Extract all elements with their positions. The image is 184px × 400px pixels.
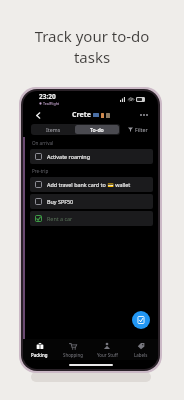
- staticText: Pre-trip: [32, 168, 49, 174]
- staticText: Shopping: [63, 352, 83, 358]
- button[interactable]: Your Stuff: [90, 339, 124, 360]
- staticText: Labels: [134, 352, 148, 358]
- staticText: On arrival: [32, 140, 54, 146]
- button[interactable]: More options: [140, 114, 148, 116]
- staticText: Activate roaming: [47, 153, 91, 160]
- staticText: TealFlight: [43, 101, 60, 106]
- button[interactable]: Back: [32, 109, 44, 121]
- staticText: Packing: [31, 352, 48, 358]
- button[interactable]: Labels: [124, 339, 158, 360]
- button[interactable]: Buy SPF50: [30, 194, 153, 209]
- staticText: Buy SPF50: [47, 198, 74, 205]
- staticText: Track your to-do tasks: [0, 26, 184, 68]
- button[interactable]: Shopping: [56, 339, 90, 360]
- button[interactable]: Rent a car: [30, 211, 153, 226]
- staticText: Add travel bank card to 💳 wallet: [47, 181, 131, 188]
- button[interactable]: Filter: [126, 124, 150, 135]
- button[interactable]: Packing: [23, 339, 56, 360]
- button[interactable]: Add travel bank card to 💳 wallet: [30, 177, 153, 192]
- staticText: Filter: [135, 126, 148, 133]
- staticText: Crete: [72, 110, 91, 120]
- button[interactable]: Crete: [72, 110, 110, 120]
- staticText: 23:20: [39, 92, 56, 101]
- staticText: Rent a car: [47, 215, 73, 222]
- staticText: Your Stuff: [97, 352, 118, 358]
- staticText: To-do: [90, 126, 104, 133]
- staticText: Items: [46, 126, 61, 133]
- button[interactable]: Activate roaming: [30, 149, 153, 164]
- button[interactable]: Add task: [132, 311, 150, 329]
- button[interactable]: Items: [32, 125, 75, 134]
- button[interactable]: To-do: [75, 125, 119, 134]
